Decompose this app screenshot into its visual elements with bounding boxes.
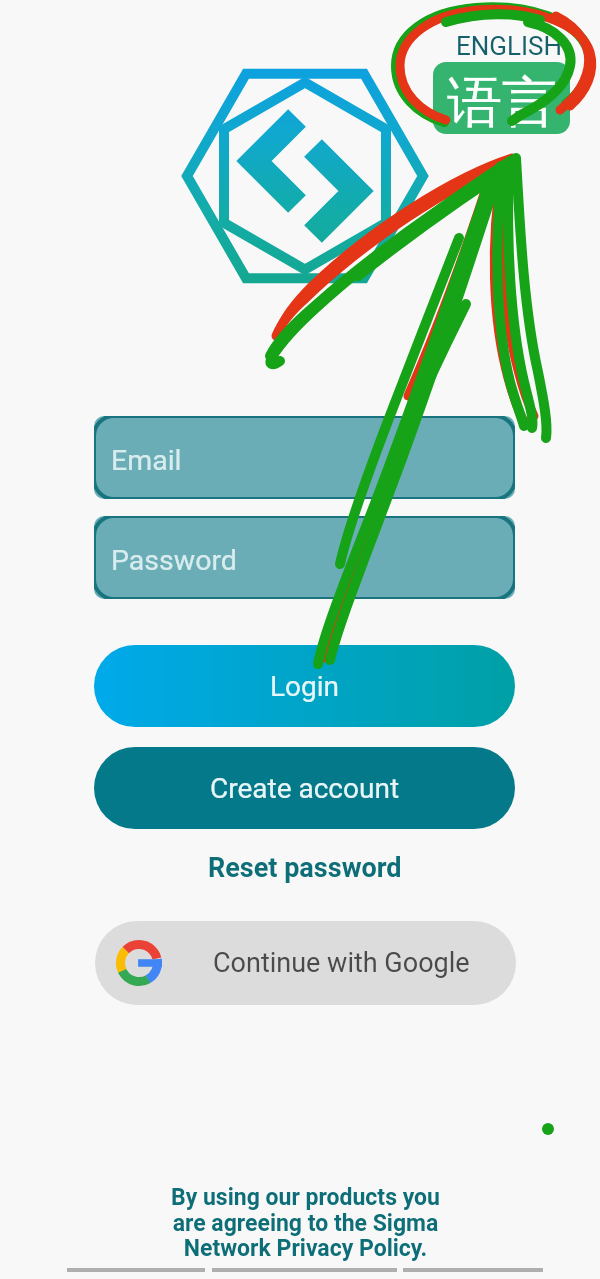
button[interactable]: Create account [94,747,515,829]
staticText: Email [111,444,182,477]
button[interactable]: Password [94,516,515,599]
button[interactable]: By using our products you are agreeing t… [0,1184,600,1261]
staticText: Reset password [208,852,402,884]
button[interactable]: Email [94,416,515,499]
button[interactable]: Login [94,645,515,727]
staticText: Login [270,670,340,703]
staticText: Create account [210,772,400,805]
staticText: 语言 [447,68,557,134]
button[interactable]: Language [425,24,577,140]
staticText: ENGLISH [456,31,563,61]
button[interactable]: Reset password [0,848,600,888]
staticText: Password [111,544,237,577]
button[interactable]: Continue with Google [95,921,516,1005]
staticText: By using our products you are agreeing t… [171,1184,440,1261]
staticText: Continue with Google [213,947,470,979]
